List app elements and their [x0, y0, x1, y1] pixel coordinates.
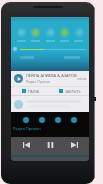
button[interactable]: ЗАКРЫТЬ — [50, 87, 89, 95]
button[interactable]: Previous track — [21, 140, 31, 150]
staticText: ПАУЗА — [28, 89, 40, 94]
button[interactable]: Quick toggle 2 — [45, 27, 56, 38]
staticText: Радио Прикол — [26, 79, 51, 84]
staticText: сейчас — [77, 77, 87, 81]
button[interactable] — [11, 96, 89, 112]
button[interactable]: ПАУЗА — [11, 87, 50, 95]
staticText: ЛЕЙЛА АЛИЕВА & АЗАРОВ — [26, 73, 77, 78]
button[interactable]: App 1 — [39, 117, 45, 123]
button[interactable]: Quick toggle 1 — [30, 27, 41, 38]
button[interactable]: App 2 — [55, 117, 61, 123]
button[interactable]: Quick toggle 3 — [59, 27, 70, 38]
button[interactable]: Quick toggle 4 — [74, 27, 85, 38]
button[interactable]: Brightness — [13, 47, 86, 51]
button[interactable]: Pause — [45, 140, 55, 150]
staticText: Радио Прикол — [13, 126, 41, 131]
staticText: ЗАКРЫТЬ — [65, 89, 81, 94]
button[interactable]: Quick toggle 0 — [16, 27, 27, 38]
button[interactable]: Next track — [69, 140, 79, 150]
button[interactable]: ЛЕЙЛА АЛИЕВА & АЗАРОВ — [11, 71, 89, 86]
button[interactable]: App 3 — [71, 117, 77, 123]
button[interactable]: App 0 — [23, 117, 29, 123]
